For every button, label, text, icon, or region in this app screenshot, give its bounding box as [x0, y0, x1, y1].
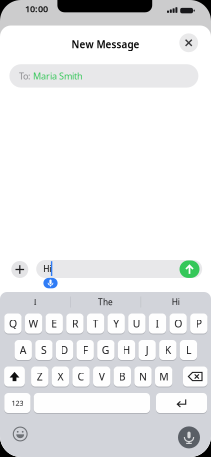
- button[interactable]: R: [66, 313, 83, 333]
- staticText: X: [57, 370, 63, 383]
- button[interactable]: I: [2, 294, 68, 310]
- staticText: C: [78, 370, 85, 383]
- button[interactable]: O: [169, 313, 187, 333]
- staticText: J: [146, 343, 149, 357]
- button[interactable]: U: [128, 313, 145, 333]
- button[interactable]: The: [72, 294, 138, 310]
- button[interactable]: H: [118, 340, 135, 360]
- button[interactable]: [179, 260, 199, 278]
- staticText: M: [159, 370, 168, 383]
- staticText: Z: [37, 370, 43, 383]
- staticText: R: [72, 317, 78, 330]
- button[interactable]: [156, 393, 207, 413]
- staticText: H: [122, 343, 130, 357]
- staticText: The: [98, 296, 113, 307]
- button[interactable]: D: [56, 340, 73, 360]
- staticText: 10:00: [25, 3, 48, 15]
- staticText: T: [93, 317, 99, 330]
- staticText: G: [102, 343, 110, 357]
- button[interactable]: Q: [4, 313, 22, 333]
- staticText: I: [155, 317, 159, 330]
- staticText: F: [83, 343, 88, 357]
- staticText: W: [29, 317, 39, 330]
- staticText: N: [139, 370, 147, 383]
- staticText: E: [51, 317, 57, 330]
- button[interactable]: A: [15, 340, 32, 360]
- button[interactable]: [34, 393, 150, 413]
- button[interactable]: S: [35, 340, 52, 360]
- button[interactable]: To:: [9, 64, 198, 88]
- button[interactable]: L: [180, 340, 197, 360]
- staticText: Q: [9, 317, 17, 330]
- staticText: K: [165, 343, 171, 357]
- staticText: V: [99, 370, 105, 383]
- button[interactable]: [36, 260, 202, 278]
- staticText: U: [133, 317, 141, 330]
- staticText: New Message: [71, 38, 139, 51]
- button[interactable]: B: [114, 366, 131, 386]
- button[interactable]: C: [72, 366, 90, 386]
- staticText: Hi: [43, 263, 51, 274]
- button[interactable]: [43, 278, 58, 288]
- button[interactable]: [178, 426, 200, 448]
- button[interactable]: F: [76, 340, 94, 360]
- button[interactable]: [179, 33, 198, 52]
- staticText: To:: [19, 70, 30, 82]
- staticText: I: [34, 296, 37, 307]
- button[interactable]: T: [87, 313, 104, 333]
- button[interactable]: N: [134, 366, 152, 386]
- staticText: P: [196, 317, 202, 330]
- staticText: O: [174, 317, 182, 330]
- button[interactable]: J: [138, 340, 156, 360]
- staticText: 123: [11, 398, 23, 408]
- staticText: S: [41, 343, 47, 357]
- button[interactable]: [4, 366, 25, 386]
- button[interactable]: P: [190, 313, 207, 333]
- staticText: D: [60, 343, 68, 357]
- button[interactable]: K: [159, 340, 176, 360]
- button[interactable]: 123: [4, 393, 30, 413]
- button[interactable]: [183, 366, 207, 386]
- button[interactable]: Z: [31, 366, 48, 386]
- button[interactable]: Y: [107, 313, 125, 333]
- staticText: Y: [113, 317, 119, 330]
- staticText: L: [186, 343, 191, 357]
- staticText: Hi: [172, 296, 180, 308]
- staticText: B: [119, 370, 126, 383]
- button[interactable]: W: [25, 313, 42, 333]
- button[interactable]: X: [52, 366, 69, 386]
- button[interactable]: M: [155, 366, 172, 386]
- button[interactable]: Hi: [143, 294, 209, 310]
- button[interactable]: [10, 424, 30, 444]
- staticText: Maria Smith: [33, 70, 83, 82]
- button[interactable]: V: [93, 366, 110, 386]
- button[interactable]: [11, 261, 28, 278]
- button[interactable]: G: [97, 340, 114, 360]
- button[interactable]: E: [46, 313, 63, 333]
- button[interactable]: I: [149, 313, 166, 333]
- staticText: A: [20, 343, 27, 357]
